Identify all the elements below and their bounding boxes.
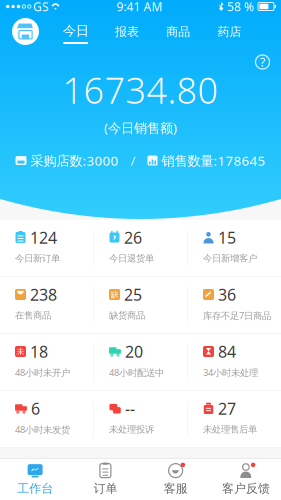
staticText: 订单 bbox=[93, 481, 117, 496]
button[interactable]: 15 bbox=[188, 220, 281, 276]
staticText: 124 bbox=[30, 227, 57, 248]
button[interactable]: 今日 bbox=[50, 13, 101, 48]
staticText: 今日新增客户 bbox=[203, 253, 257, 264]
button[interactable]: 6 bbox=[0, 391, 93, 447]
button[interactable]: 报表 bbox=[101, 13, 153, 48]
button[interactable]: 20 bbox=[94, 334, 187, 390]
staticText: 18 bbox=[30, 341, 48, 362]
button[interactable]: 84 bbox=[188, 334, 281, 390]
button[interactable]: 工作台 bbox=[0, 459, 70, 500]
staticText: 采购店数:3000 bbox=[30, 152, 118, 169]
staticText: 商品 bbox=[166, 24, 190, 39]
staticText: / bbox=[118, 152, 147, 169]
staticText: 缺 bbox=[110, 290, 118, 299]
button[interactable]: 订单 bbox=[70, 459, 140, 500]
staticText: -- bbox=[125, 398, 135, 419]
button[interactable]: 36 bbox=[188, 277, 281, 333]
button[interactable]: 27 bbox=[188, 391, 281, 447]
staticText: 今日退货单 bbox=[109, 253, 154, 264]
staticText: 未处理投诉 bbox=[109, 424, 154, 435]
staticText: 26 bbox=[124, 227, 142, 248]
button[interactable]: Help bbox=[252, 52, 272, 72]
button[interactable]: 缺 bbox=[94, 277, 187, 333]
staticText: 15 bbox=[218, 227, 236, 248]
staticText: 25 bbox=[124, 284, 142, 305]
button[interactable]: 商品 bbox=[153, 13, 204, 48]
button[interactable]: 未 bbox=[0, 334, 93, 390]
staticText: 客服 bbox=[164, 481, 188, 496]
staticText: 58 % bbox=[227, 0, 254, 14]
button[interactable]: 238 bbox=[0, 277, 93, 333]
staticText: (今日销售额) bbox=[104, 119, 177, 136]
staticText: 客户反馈 bbox=[222, 481, 270, 496]
staticText: GS bbox=[33, 0, 49, 14]
staticText: 在售商品 bbox=[15, 310, 51, 321]
button[interactable]: 124 bbox=[0, 220, 93, 276]
staticText: 缺货商品 bbox=[109, 310, 145, 321]
staticText: 未 bbox=[16, 347, 24, 356]
button[interactable]: Store bbox=[9, 13, 50, 48]
staticText: 34小时未处理 bbox=[203, 366, 258, 379]
staticText: 库存不足7日商品 bbox=[203, 309, 271, 322]
staticText: 报表 bbox=[115, 24, 139, 39]
staticText: 48小时未开户 bbox=[15, 366, 70, 379]
button[interactable]: 客服 bbox=[140, 459, 211, 500]
staticText: 6 bbox=[31, 398, 40, 419]
button[interactable]: 客户反馈 bbox=[211, 459, 281, 500]
staticText: 9:41 AM bbox=[116, 0, 162, 14]
staticText: 未处理售后单 bbox=[203, 424, 257, 435]
staticText: 药店 bbox=[217, 24, 241, 39]
staticText: 16734.80 bbox=[62, 66, 218, 114]
staticText: 20 bbox=[125, 341, 143, 362]
staticText: 27 bbox=[218, 398, 236, 419]
button[interactable]: 26 bbox=[94, 220, 187, 276]
staticText: 84 bbox=[218, 341, 236, 362]
staticText: 48小时未发货 bbox=[15, 423, 70, 436]
staticText: 48小时配送中 bbox=[109, 366, 164, 379]
button[interactable]: -- bbox=[94, 391, 187, 447]
staticText: 今日 bbox=[63, 23, 89, 39]
staticText: 238 bbox=[30, 284, 57, 305]
button[interactable]: 药店 bbox=[204, 13, 255, 48]
staticText: 工作台 bbox=[17, 481, 53, 496]
staticText: 销售数量:178645 bbox=[161, 152, 265, 169]
staticText: 36 bbox=[218, 284, 236, 305]
staticText: 今日新订单 bbox=[15, 253, 60, 264]
staticText: ? bbox=[260, 54, 265, 70]
